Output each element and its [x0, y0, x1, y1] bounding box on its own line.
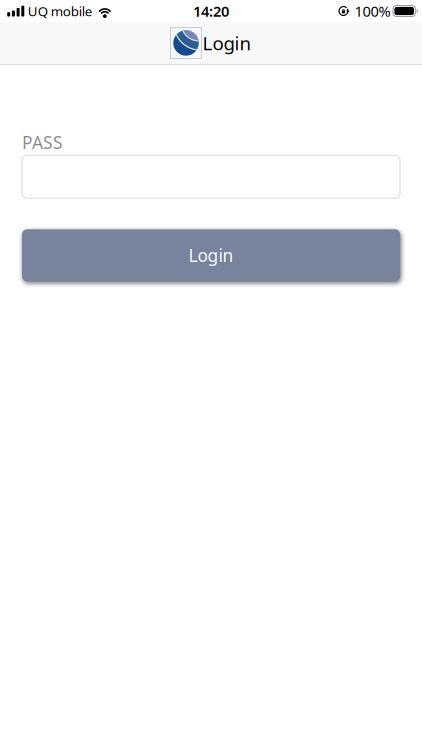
- staticText: Login: [202, 31, 251, 55]
- staticText: Login: [188, 244, 233, 267]
- staticText: 14:20: [193, 1, 229, 21]
- staticText: UQ mobile: [28, 2, 93, 20]
- staticText: 100%: [354, 1, 390, 21]
- button[interactable]: Login: [22, 229, 400, 281]
- staticText: PASS: [22, 131, 63, 154]
